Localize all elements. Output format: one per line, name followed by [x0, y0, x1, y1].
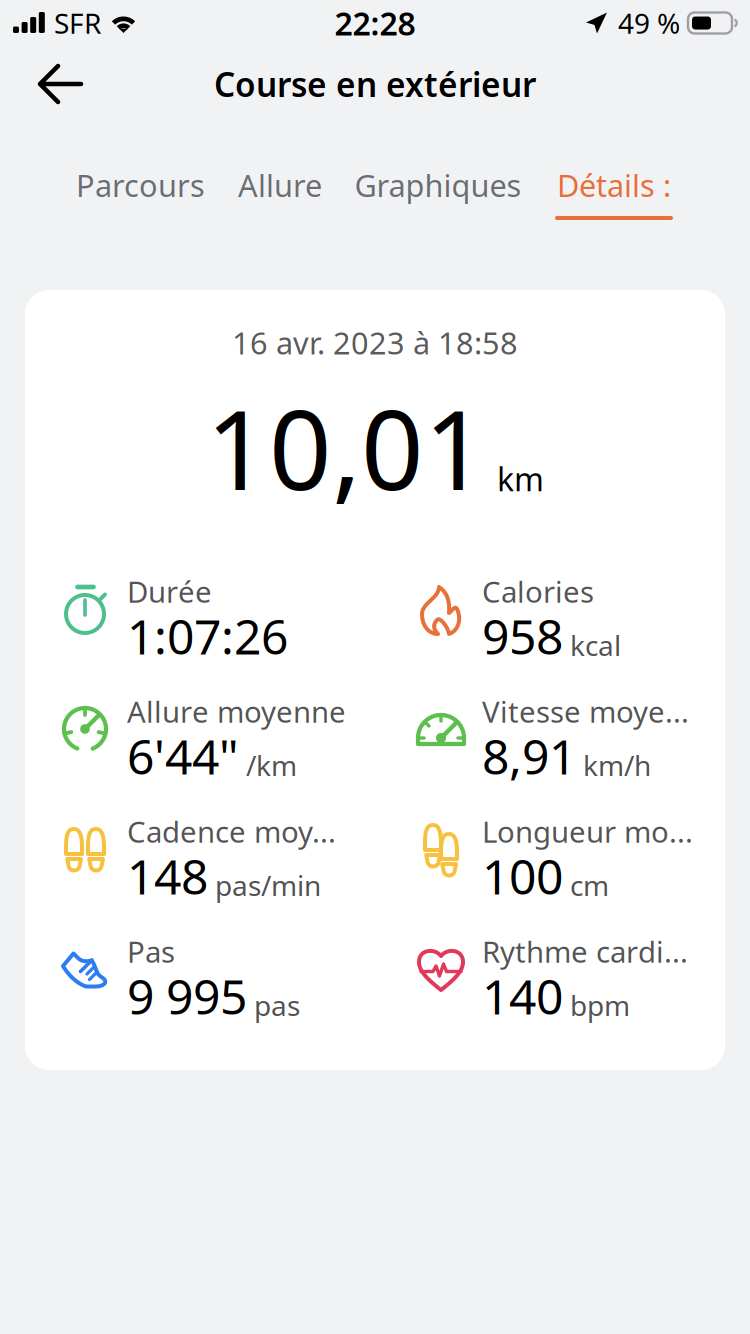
staticText: 49 %: [618, 4, 680, 42]
staticText: km: [497, 458, 544, 500]
staticText: 1:07:26: [127, 604, 288, 668]
button[interactable]: Parcours: [77, 170, 204, 220]
button[interactable]: Allure: [239, 170, 321, 220]
staticText: pas: [254, 987, 300, 1024]
staticText: 6'44": [127, 724, 239, 788]
staticText: Calories: [482, 572, 594, 611]
staticText: SFR: [54, 4, 101, 42]
staticText: Allure: [238, 165, 322, 205]
staticText: Pas: [127, 932, 175, 971]
staticText: Détails :: [557, 165, 671, 205]
staticText: Cadence moy...: [127, 812, 336, 851]
button[interactable]: Détails :: [555, 170, 673, 220]
staticText: 22:28: [334, 2, 415, 44]
staticText: Allure moyenne: [127, 692, 346, 731]
staticText: pas/min: [215, 867, 321, 904]
staticText: 8,91: [482, 724, 576, 788]
staticText: cm: [570, 867, 609, 904]
staticText: Parcours: [76, 165, 205, 205]
staticText: bpm: [570, 987, 630, 1024]
staticText: Durée: [127, 572, 212, 611]
staticText: 10,01: [206, 375, 487, 520]
staticText: kcal: [570, 627, 621, 664]
staticText: 9 995: [127, 964, 247, 1028]
staticText: Longueur mo...: [482, 812, 693, 851]
staticText: Rythme cardi...: [482, 932, 688, 971]
staticText: 140: [482, 964, 563, 1028]
staticText: 148: [127, 844, 208, 908]
staticText: 100: [482, 844, 563, 908]
staticText: 16 avr. 2023 à 18:58: [232, 322, 518, 363]
staticText: /km: [246, 747, 297, 784]
button[interactable]: Back: [24, 51, 97, 117]
staticText: Course en extérieur: [214, 62, 536, 106]
staticText: km/h: [583, 747, 651, 784]
staticText: Graphiques: [354, 165, 521, 205]
staticText: 958: [482, 604, 563, 668]
button[interactable]: Graphiques: [356, 170, 520, 220]
staticText: Vitesse moye...: [482, 692, 689, 731]
